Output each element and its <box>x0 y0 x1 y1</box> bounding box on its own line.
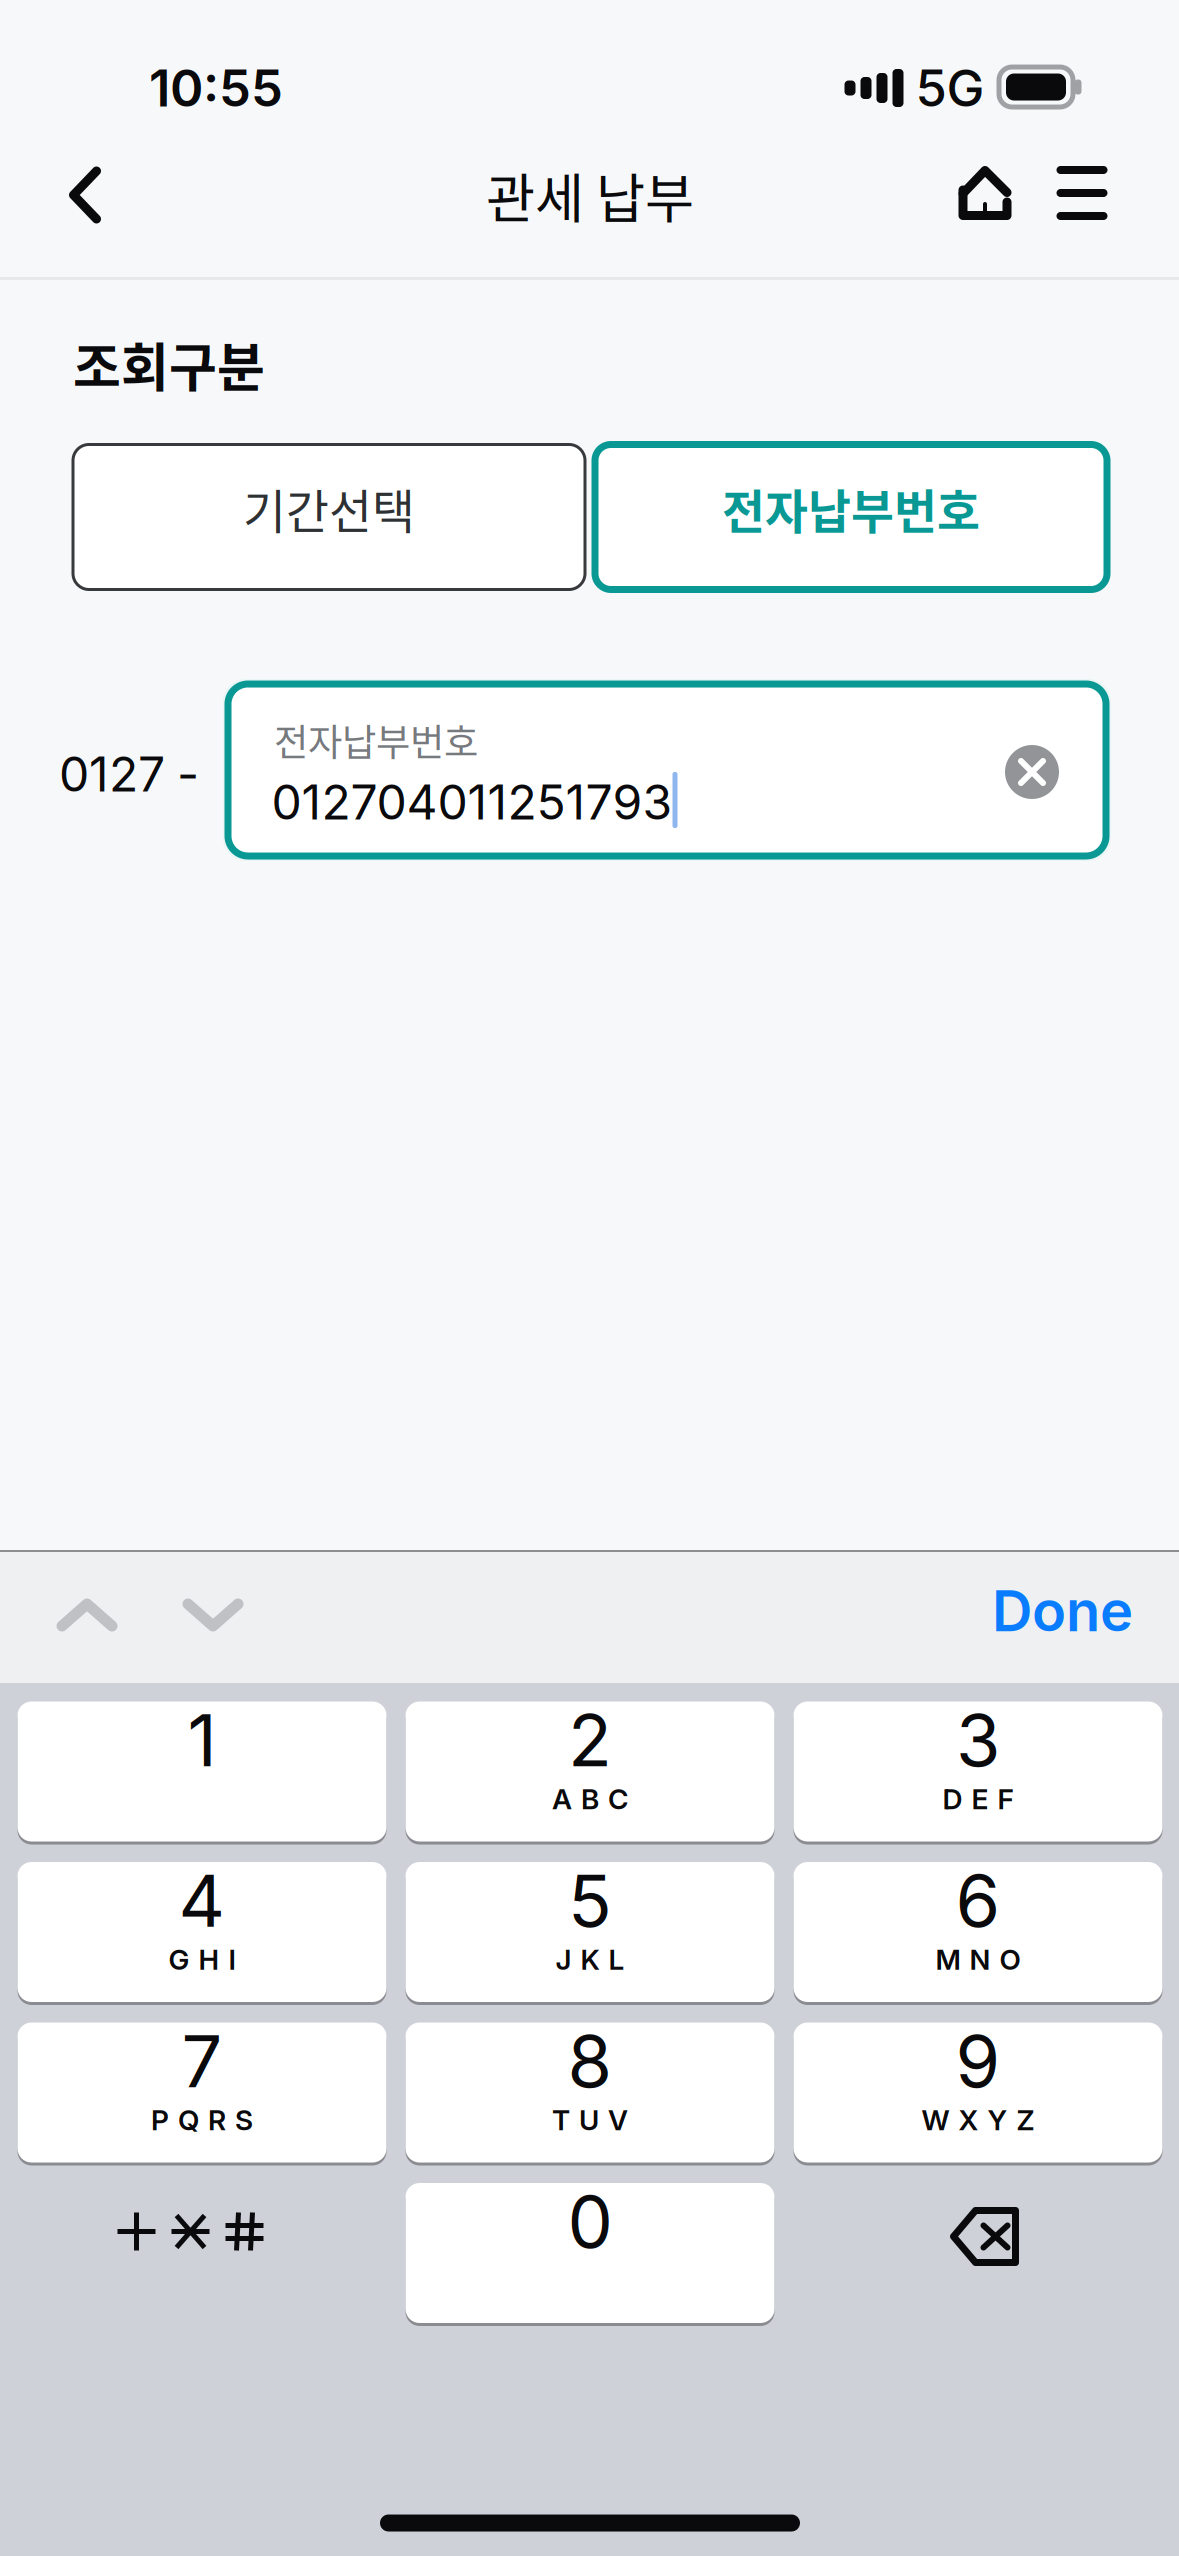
staticText: 기간선택 <box>243 475 415 542</box>
staticText: WXYZ <box>921 2103 1034 2137</box>
staticText: 10:55 <box>149 57 283 119</box>
button[interactable]: 전자납부번호 <box>595 444 1107 589</box>
button[interactable]: Next field <box>158 1549 268 1680</box>
staticText: 1 <box>187 1696 216 1783</box>
button[interactable]: 6 <box>793 1860 1162 2003</box>
button[interactable]: 기간선택 <box>73 444 585 589</box>
button[interactable]: Done <box>923 1545 1133 1676</box>
button[interactable]: 5 <box>405 1860 774 2003</box>
staticText: 4 <box>178 1857 225 1944</box>
staticText: TUV <box>552 2103 628 2137</box>
staticText: DEF <box>942 1782 1013 1816</box>
staticText: 7 <box>181 2017 222 2104</box>
staticText: 5G <box>915 57 984 119</box>
staticText: JKL <box>555 1943 624 1976</box>
button[interactable]: Back <box>29 133 141 257</box>
button[interactable]: Previous field <box>32 1549 142 1680</box>
button[interactable]: Home <box>939 131 1031 255</box>
button[interactable]: 0 <box>405 2181 774 2324</box>
staticText: 9 <box>955 2017 1000 2104</box>
staticText: 조회구분 <box>73 326 265 402</box>
staticText: 전자납부번호 <box>722 475 980 542</box>
staticText: ABC <box>552 1782 628 1816</box>
staticText: Done <box>992 1577 1133 1645</box>
staticText: 2 <box>568 1696 612 1783</box>
staticText: 3 <box>956 1696 1000 1783</box>
staticText: 관세 납부 <box>486 156 694 234</box>
button[interactable]: 7 <box>17 2021 386 2164</box>
staticText: 8 <box>567 2017 612 2104</box>
button[interactable]: 9 <box>793 2021 1162 2164</box>
button[interactable]: 3 <box>793 1700 1162 1843</box>
button[interactable]: Clear text <box>1005 745 1059 799</box>
staticText: 0 <box>567 2178 612 2265</box>
button[interactable]: Symbols <box>17 2181 386 2324</box>
button[interactable]: 2 <box>405 1700 774 1843</box>
staticText: 전자납부번호 <box>274 713 478 767</box>
button[interactable]: Delete <box>793 2181 1162 2324</box>
button[interactable]: Menu <box>1036 131 1128 255</box>
button[interactable]: 8 <box>405 2021 774 2164</box>
staticText: 5 <box>568 1857 612 1944</box>
staticText: 012704011251793 <box>271 773 672 831</box>
staticText: 0127 <box>59 745 165 803</box>
staticText: MNO <box>935 1943 1020 1976</box>
button[interactable]: 4 <box>17 1860 386 2003</box>
button[interactable]: 1 <box>17 1700 386 1843</box>
staticText: GHI <box>168 1943 235 1976</box>
staticText: 6 <box>955 1857 1000 1944</box>
staticText: - <box>177 745 199 803</box>
staticText: PQRS <box>151 2103 253 2137</box>
